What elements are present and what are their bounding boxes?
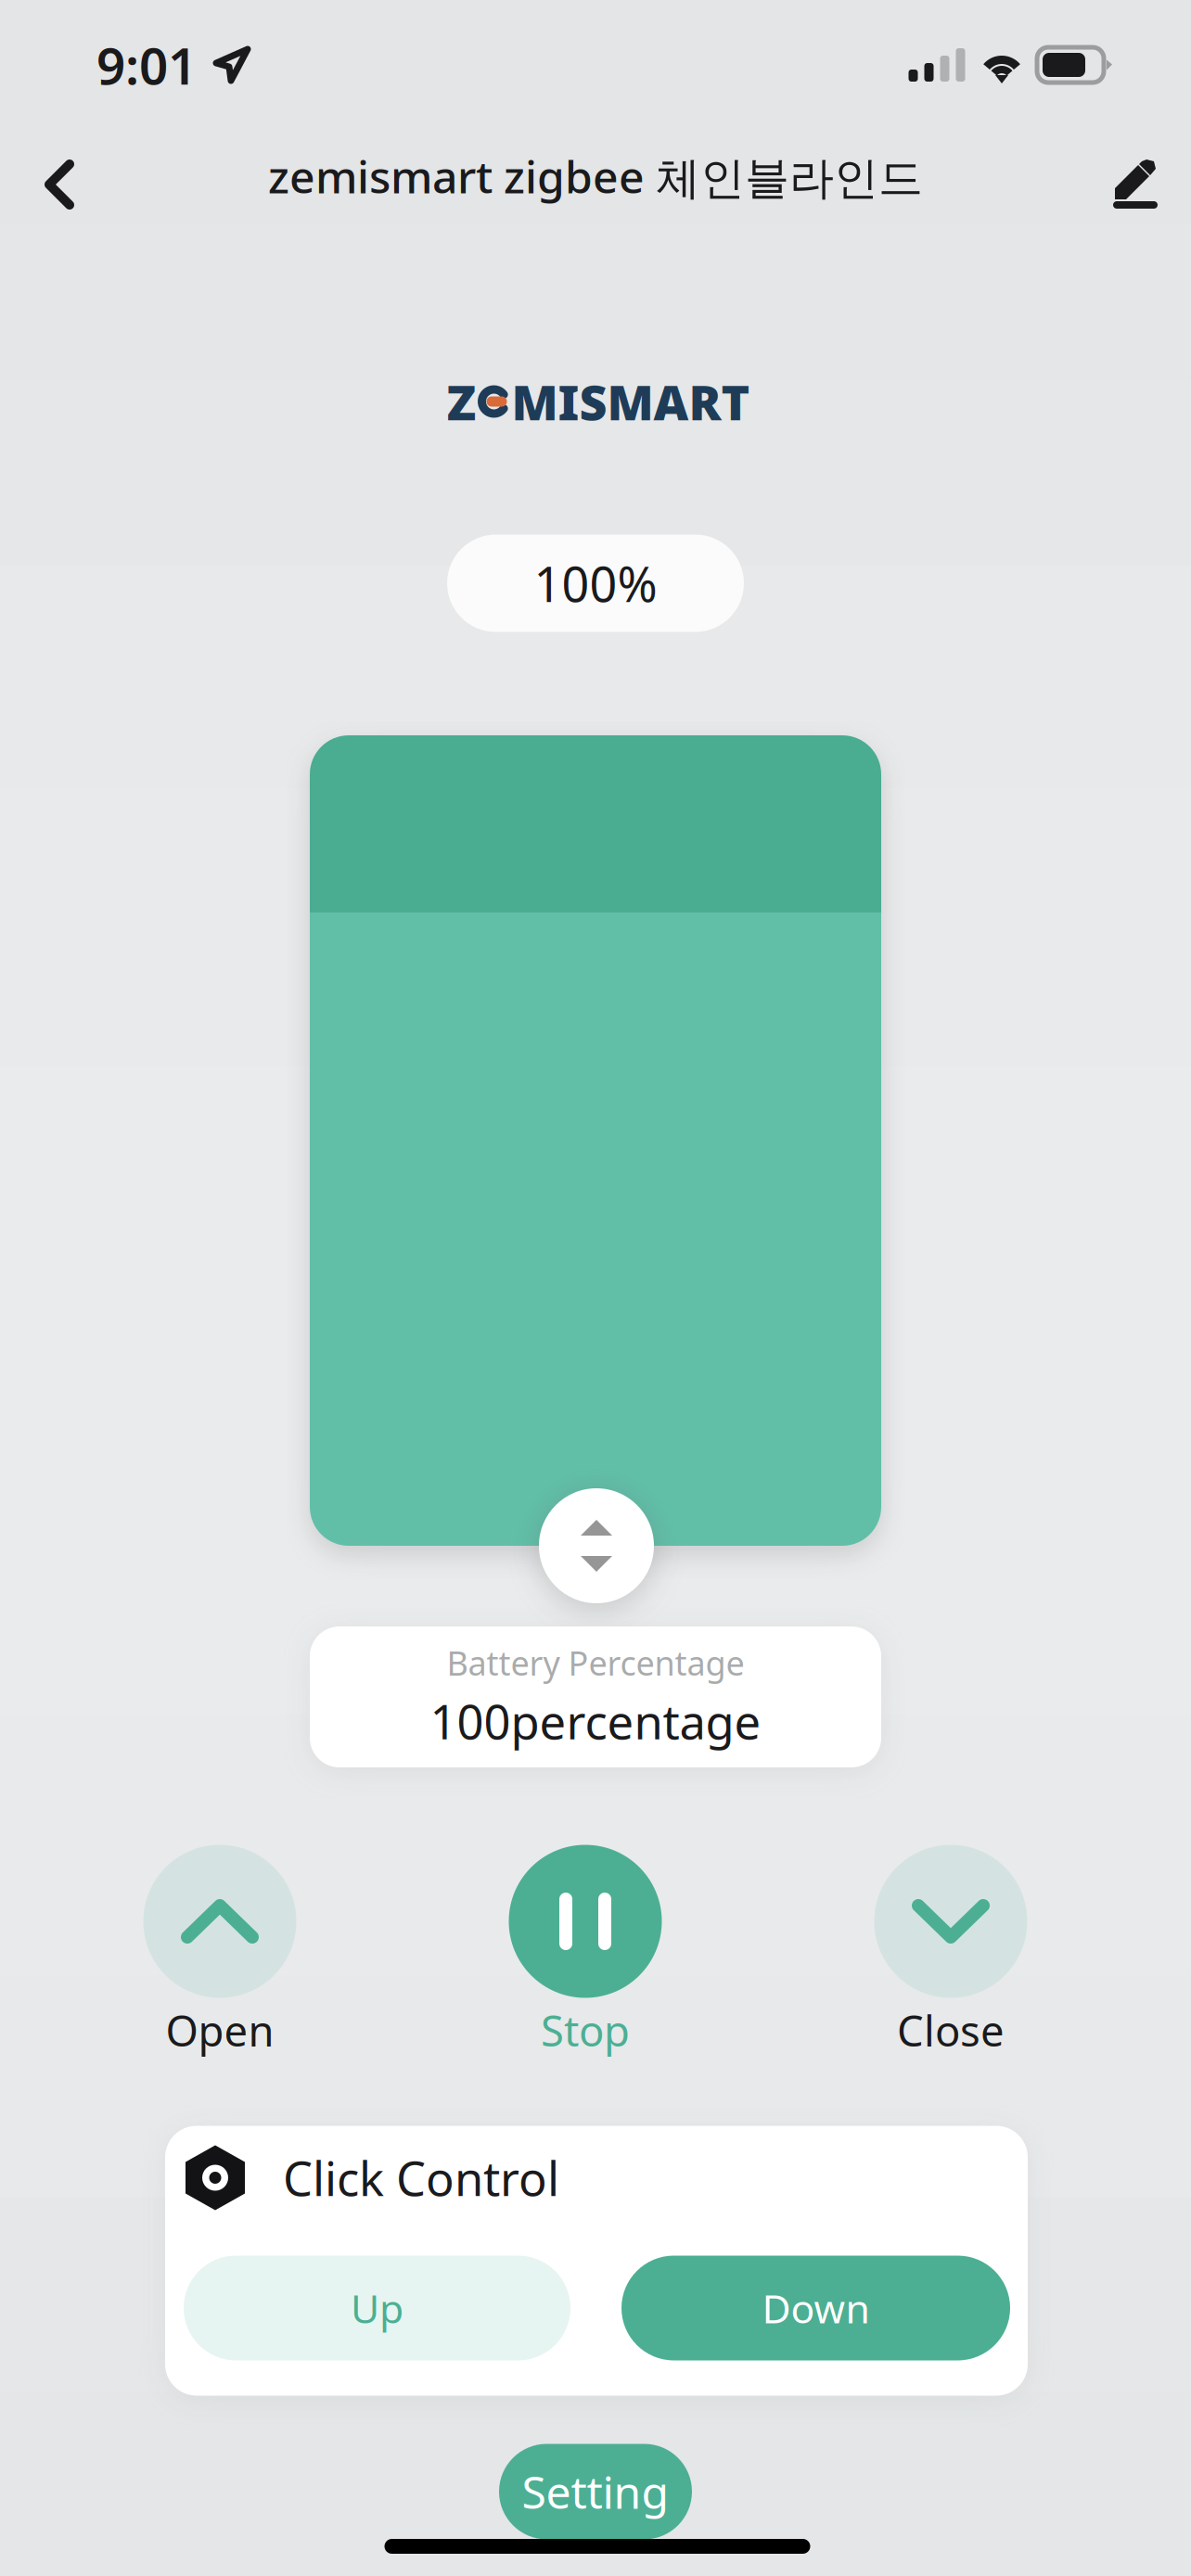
button[interactable]: Close <box>839 1845 1062 2059</box>
button[interactable]: Open <box>109 1845 331 2059</box>
staticText: zemismart zigbee 체인블라인드 <box>268 147 923 206</box>
button[interactable]: Stop <box>474 1845 697 2059</box>
button[interactable]: Up <box>184 2256 570 2360</box>
staticText: Battery Percentage <box>447 1640 744 1685</box>
staticText: Close <box>897 2002 1005 2058</box>
staticText: 9:01 <box>96 31 197 99</box>
staticText: Open <box>166 2002 274 2058</box>
staticText: Z <box>447 370 476 434</box>
staticText: Up <box>351 2282 403 2334</box>
staticText: 100percentage <box>430 1690 761 1752</box>
button[interactable]: Setting <box>499 2444 692 2539</box>
staticText: Setting <box>522 2462 669 2521</box>
staticText: MISMART <box>512 370 750 434</box>
button[interactable]: Edit <box>1082 124 1171 228</box>
staticText: 100% <box>534 551 657 615</box>
staticText: Down <box>762 2282 870 2334</box>
staticText: Click Control <box>283 2147 559 2209</box>
button[interactable]: Down <box>621 2256 1010 2360</box>
button[interactable]: Back <box>20 124 104 228</box>
staticText: Stop <box>541 2002 630 2058</box>
